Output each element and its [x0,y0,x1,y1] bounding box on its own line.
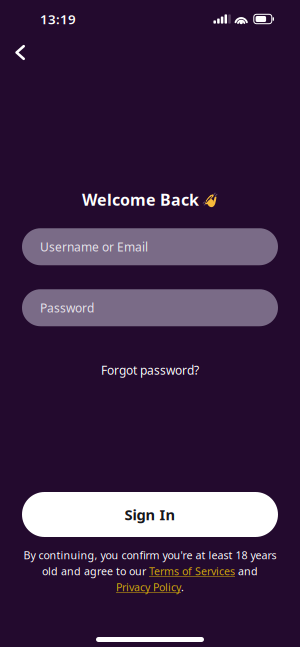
staticText: Forgot password? [101,362,199,378]
staticText: Sign In [124,505,175,524]
button[interactable]: Sign In [22,492,278,537]
button[interactable]: Forgot password? [91,358,209,382]
staticText: and [235,564,258,578]
button[interactable]: Privacy Policy [116,580,181,594]
staticText: Privacy Policy [116,580,181,594]
staticText: Password [40,300,94,316]
staticText: Welcome Back [82,189,199,210]
button[interactable]: Username or Email [22,228,278,265]
staticText: 13:19 [40,10,76,28]
staticText: . [181,580,184,594]
button[interactable]: Terms of Services [149,564,235,578]
button[interactable]: Password [22,289,278,326]
staticText: By continuing, you confirm you're at lea… [23,548,276,562]
staticText: Username or Email [40,239,148,255]
staticText: old and agree to our [42,564,149,578]
staticText: Terms of Services [149,564,235,578]
button[interactable]: Back [8,38,32,67]
